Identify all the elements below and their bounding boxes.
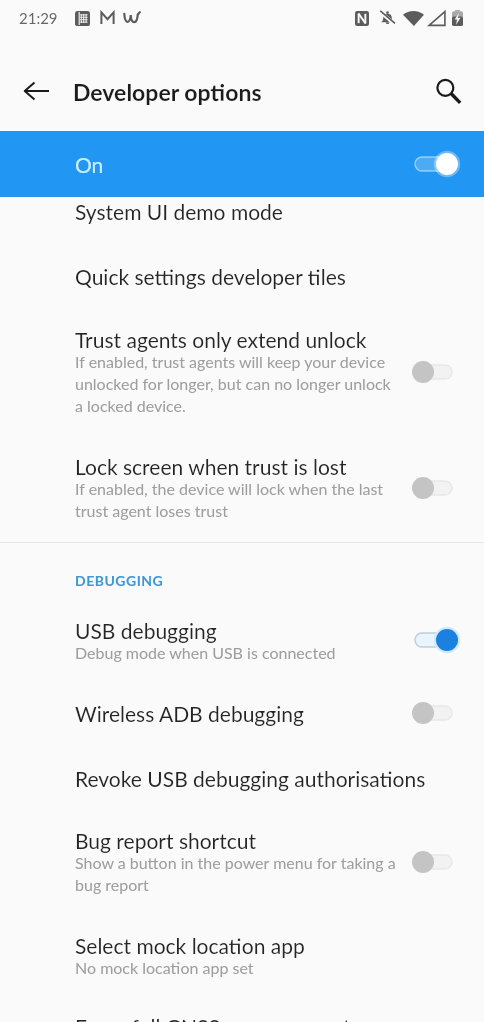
button[interactable]: On (0, 131, 484, 197)
button[interactable]: Search (425, 68, 473, 116)
staticText: Debug mode when USB is connected (75, 643, 336, 662)
staticText: On (75, 152, 104, 177)
button[interactable]: Toggle, off (411, 357, 461, 387)
staticText: Developer options (73, 78, 262, 106)
button[interactable]: Trust agents only extend unlock (0, 327, 484, 416)
button[interactable]: Wireless ADB debugging (0, 701, 484, 731)
button[interactable]: Toggle, off (411, 847, 461, 877)
button[interactable]: System UI demo mode (0, 199, 484, 224)
staticText: If enabled, the device will lock when th… (75, 479, 399, 521)
button[interactable]: Lock screen when trust is lost (0, 454, 484, 521)
staticText: No mock location app set (75, 958, 254, 977)
button[interactable]: Toggle, on (411, 625, 461, 655)
button[interactable]: Navigate up (12, 67, 60, 115)
button[interactable]: Developer options, on (411, 149, 461, 179)
staticText: If enabled, trust agents will keep your … (75, 352, 399, 416)
staticText: 21:29 (19, 9, 58, 27)
button[interactable]: Bug report shortcut (0, 828, 484, 895)
staticText: Lock screen when trust is lost (75, 454, 347, 479)
staticText: Show a button in the power menu for taki… (75, 853, 399, 895)
button[interactable]: Toggle, off (411, 473, 461, 503)
button[interactable]: Toggle, off (411, 698, 461, 728)
staticText: Bug report shortcut (75, 828, 256, 853)
button[interactable]: USB debugging (0, 618, 484, 662)
staticText: Quick settings developer tiles (75, 264, 346, 289)
staticText: Revoke USB debugging authorisations (75, 766, 426, 791)
staticText: Wireless ADB debugging (75, 701, 304, 726)
button[interactable]: Quick settings developer tiles (0, 264, 484, 289)
button[interactable]: Revoke USB debugging authorisations (0, 766, 484, 791)
button[interactable]: Force full GNSS measurements (0, 1014, 484, 1022)
staticText: System UI demo mode (75, 199, 283, 224)
staticText: Force full GNSS measurements (75, 1014, 360, 1022)
staticText: Trust agents only extend unlock (75, 327, 367, 352)
staticText: USB debugging (75, 618, 217, 643)
button[interactable]: Select mock location app (0, 933, 484, 977)
staticText: DEBUGGING (75, 572, 164, 589)
staticText: Select mock location app (75, 933, 305, 958)
